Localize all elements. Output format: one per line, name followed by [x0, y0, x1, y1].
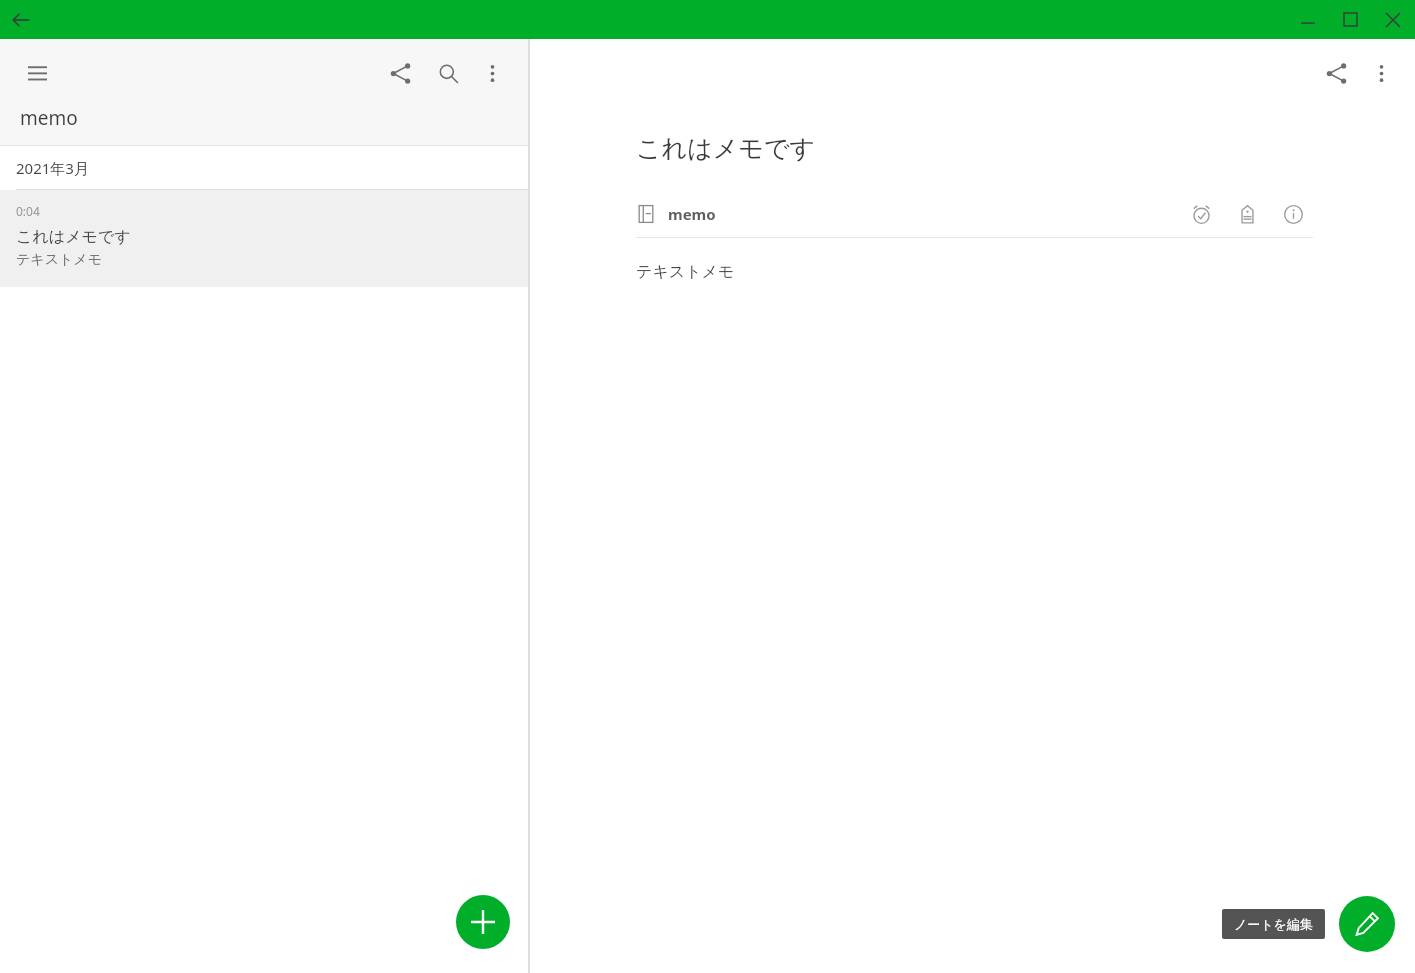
button[interactable]: Share note — [1313, 50, 1359, 96]
button[interactable]: 0:04 — [0, 190, 528, 287]
button[interactable]: Maximize — [1329, 0, 1371, 39]
button[interactable]: Back — [6, 5, 36, 35]
staticText: これはメモです — [636, 133, 816, 164]
button[interactable]: New note — [456, 895, 510, 949]
button[interactable]: Minimize — [1287, 0, 1329, 39]
button[interactable]: Close — [1371, 0, 1415, 39]
staticText: 2021年3月 — [16, 158, 89, 178]
staticText: memo — [20, 105, 78, 131]
staticText: テキストメモ — [636, 262, 735, 282]
button[interactable]: Edit note — [1339, 896, 1395, 952]
button[interactable]: Tags — [1227, 194, 1267, 234]
button[interactable]: Note info — [1273, 194, 1313, 234]
staticText: ノートを編集 — [1234, 916, 1313, 932]
staticText: これはメモです — [16, 227, 131, 247]
button[interactable]: Reminder — [1181, 194, 1221, 234]
button[interactable]: 2021年3月 — [0, 146, 528, 190]
button[interactable]: More options — [472, 53, 512, 93]
staticText: memo — [668, 204, 716, 224]
button[interactable]: memo — [636, 204, 716, 224]
staticText: 0:04 — [16, 203, 40, 219]
button[interactable]: Share — [378, 51, 422, 95]
button[interactable]: Menu — [20, 56, 54, 90]
button[interactable]: Search — [426, 51, 470, 95]
staticText: テキストメモ — [16, 251, 102, 269]
button[interactable]: More options — [1361, 53, 1401, 93]
